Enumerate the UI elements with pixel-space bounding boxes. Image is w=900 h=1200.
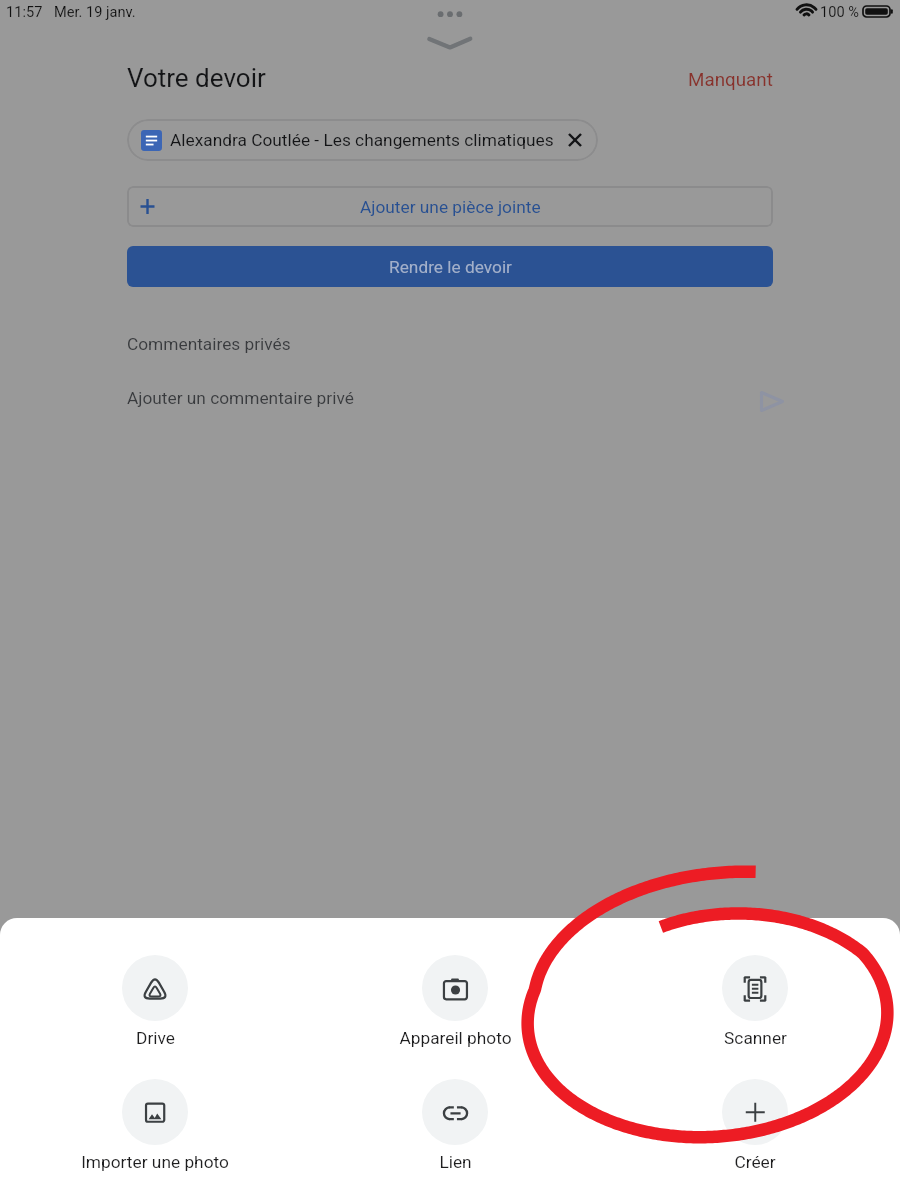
staticText: Rendre le devoir xyxy=(389,257,512,277)
staticText: Manquant xyxy=(688,69,773,91)
staticText: 100 % xyxy=(820,3,859,20)
staticText: Scanner xyxy=(724,1028,787,1048)
button[interactable]: Drive xyxy=(5,955,305,1048)
button[interactable]: Lien xyxy=(305,1079,605,1172)
staticText: Drive xyxy=(136,1028,175,1048)
staticText: Ajouter une pièce jointe xyxy=(360,197,541,217)
button[interactable]: Ajouter une pièce jointe xyxy=(127,186,773,227)
button[interactable]: Scanner xyxy=(605,955,900,1048)
staticText: Alexandra Coutlée - Les changements clim… xyxy=(170,130,554,150)
other: Remove attachment xyxy=(564,129,586,151)
button[interactable]: Appareil photo xyxy=(305,955,605,1048)
staticText: Ajouter un commentaire privé xyxy=(127,388,354,408)
staticText: Commentaires privés xyxy=(127,334,291,354)
staticText: Importer une photo xyxy=(81,1152,229,1172)
staticText: 11:57 xyxy=(6,3,43,20)
button[interactable]: Rendre le devoir xyxy=(127,246,773,287)
staticText: Appareil photo xyxy=(399,1028,512,1048)
staticText: Créer xyxy=(734,1152,776,1172)
staticText: Votre devoir xyxy=(127,63,266,93)
staticText: Lien xyxy=(439,1152,472,1172)
staticText: Mer. 19 janv. xyxy=(54,3,136,20)
other: Send comment xyxy=(760,391,784,412)
button[interactable]: Créer xyxy=(605,1079,900,1172)
button[interactable]: Alexandra Coutlée - Les changements clim… xyxy=(127,119,598,161)
button[interactable]: Importer une photo xyxy=(5,1079,305,1172)
